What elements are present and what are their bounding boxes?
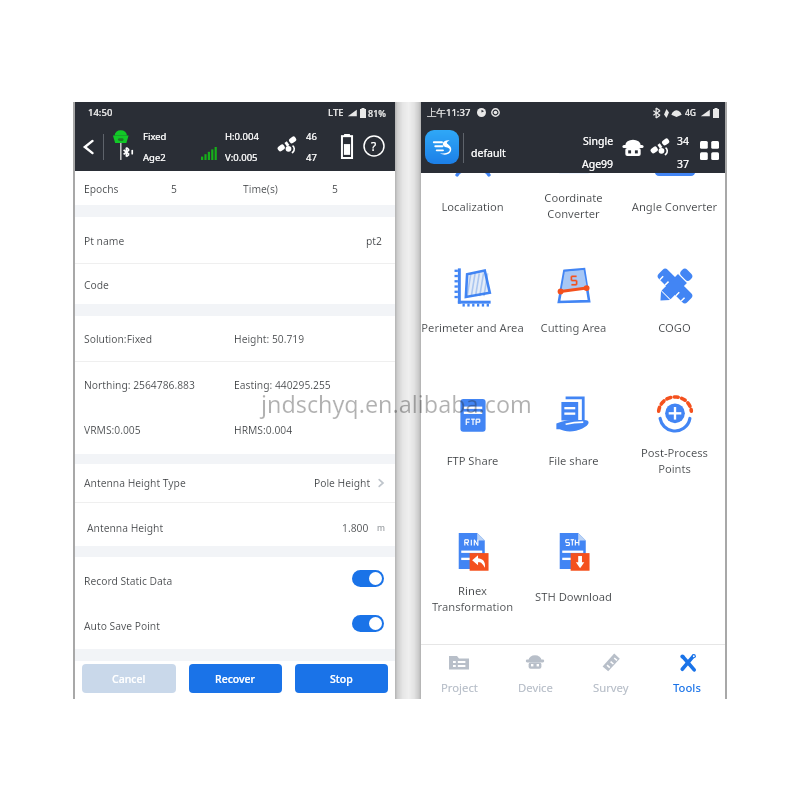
staticText: Recover xyxy=(215,672,256,686)
staticText: Northing: 2564786.883 xyxy=(84,378,195,392)
staticText: Antenna Height Type xyxy=(84,476,186,490)
staticText: Age2 xyxy=(143,151,166,164)
staticText: Pt name xyxy=(84,234,125,248)
staticText: Age99 xyxy=(582,157,614,171)
button[interactable]: Post-Process Points xyxy=(624,393,725,477)
button[interactable]: Angle Converter xyxy=(624,173,725,231)
button[interactable]: File share xyxy=(523,393,624,485)
staticText: Height: 50.719 xyxy=(234,332,305,346)
staticText: Antenna Height xyxy=(87,521,164,535)
button[interactable]: Cutting Area xyxy=(523,264,624,352)
button[interactable]: Code xyxy=(75,264,395,304)
staticText: COGO xyxy=(604,320,725,335)
button[interactable]: Auto Save Point xyxy=(75,604,395,644)
staticText: jndschyq.en.alibaba.com xyxy=(261,388,532,420)
staticText: Stop xyxy=(330,672,353,686)
staticText: Localization xyxy=(421,199,543,214)
staticText: Time(s) xyxy=(243,182,278,196)
staticText: Project xyxy=(441,680,478,695)
button[interactable]: Stop xyxy=(295,664,388,693)
staticText: H:0.004 xyxy=(225,130,259,143)
staticText: 81% xyxy=(368,107,386,119)
staticText: Perimeter and Area xyxy=(421,320,543,335)
button[interactable]: Grid menu xyxy=(698,139,720,161)
staticText: V:0.005 xyxy=(225,151,258,164)
button[interactable]: Tools xyxy=(649,645,725,699)
staticText: 14:50 xyxy=(88,106,113,119)
button[interactable]: Rinex Transformation xyxy=(422,529,523,615)
button[interactable]: Localization xyxy=(422,173,523,231)
staticText: Cutting Area xyxy=(503,320,644,335)
staticText: Survey xyxy=(593,680,629,695)
staticText: m xyxy=(377,522,385,534)
button[interactable]: Pt name xyxy=(75,217,395,263)
button[interactable]: Perimeter and Area xyxy=(422,264,523,352)
staticText: Code xyxy=(84,278,109,292)
staticText: LTE xyxy=(328,106,344,119)
staticText: STH Download xyxy=(503,589,644,604)
staticText: Rinex Transformation xyxy=(421,583,543,614)
staticText: Fixed xyxy=(143,130,167,143)
staticText: Tools xyxy=(673,680,701,695)
staticText: 5 xyxy=(332,182,338,196)
staticText: Coordinate Converter xyxy=(503,190,644,221)
button[interactable]: Antenna Height Type xyxy=(75,464,395,502)
staticText: Epochs xyxy=(84,182,119,196)
button[interactable]: Recover xyxy=(189,664,282,693)
button[interactable]: Record Static Data xyxy=(75,559,395,599)
staticText: Easting: 440295.255 xyxy=(234,378,331,392)
staticText: 上午11:37 xyxy=(427,106,471,119)
staticText: Single xyxy=(583,134,614,148)
staticText: VRMS:0.005 xyxy=(84,423,141,437)
button[interactable]: Coordinate Converter xyxy=(523,173,624,222)
button[interactable]: Survey xyxy=(573,645,649,699)
staticText: Cancel xyxy=(112,672,146,686)
staticText: Record Static Data xyxy=(84,574,173,588)
button[interactable]: FTP Share xyxy=(422,393,523,485)
button[interactable]: Project xyxy=(421,645,497,699)
staticText: 4G xyxy=(685,107,697,119)
staticText: 47 xyxy=(306,151,317,164)
staticText: Device xyxy=(518,680,553,695)
staticText: pt2 xyxy=(366,234,382,248)
button[interactable]: Device xyxy=(497,645,573,699)
staticText: File share xyxy=(503,453,644,468)
staticText: 5 xyxy=(171,182,177,196)
staticText: Pole Height xyxy=(314,476,371,490)
staticText: default xyxy=(471,146,506,160)
button[interactable]: STH Download xyxy=(523,529,624,621)
button[interactable]: COGO xyxy=(624,264,725,352)
staticText: ? xyxy=(371,138,377,154)
button[interactable]: Cancel xyxy=(82,664,176,693)
staticText: HRMS:0.004 xyxy=(234,423,293,437)
staticText: Post-Process Points xyxy=(604,445,725,476)
staticText: Angle Converter xyxy=(604,199,725,214)
button[interactable]: App menu xyxy=(425,130,459,164)
staticText: Solution:Fixed xyxy=(84,332,153,346)
staticText: Auto Save Point xyxy=(84,619,160,633)
staticText: 34 xyxy=(677,134,690,148)
button[interactable]: Back xyxy=(75,123,103,171)
staticText: FTP Share xyxy=(421,453,543,468)
staticText: 1.800 xyxy=(342,521,369,535)
button[interactable]: Help xyxy=(362,134,386,158)
staticText: 37 xyxy=(677,157,690,171)
staticText: 46 xyxy=(306,130,317,143)
